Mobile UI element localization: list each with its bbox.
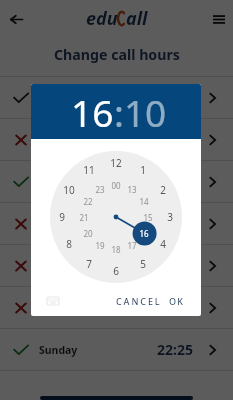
button[interactable]: Friday (0, 245, 233, 286)
button[interactable]: SAVE (40, 396, 193, 400)
button[interactable]: Tuesday (0, 119, 233, 160)
staticText: Monday (39, 91, 82, 105)
button[interactable]: Thursday (0, 203, 233, 244)
staticText: 09:30 (157, 130, 193, 149)
staticText: 1 (140, 163, 146, 177)
button[interactable]: Switch to keyboard input (44, 292, 62, 310)
staticText: 5 (140, 257, 146, 271)
staticText: 16 (71, 87, 114, 137)
staticText: 22 (83, 196, 93, 207)
staticText: :10 (114, 87, 167, 137)
staticText: 4 (160, 237, 166, 251)
staticText: Thursday (39, 217, 88, 231)
button[interactable]: Menu (207, 7, 231, 31)
button[interactable]: Saturday (0, 287, 233, 328)
button[interactable]: Monday (0, 77, 233, 118)
staticText: Wednesday (39, 175, 100, 189)
staticText: 22:25 (157, 340, 193, 359)
staticText: 11 (83, 163, 95, 177)
staticText: 17 (127, 240, 137, 251)
staticText: 13 (127, 184, 137, 195)
staticText: 18 (111, 244, 121, 255)
button[interactable]: OK (166, 290, 188, 312)
staticText: 08:00 (157, 88, 193, 107)
staticText: 2 (160, 183, 166, 197)
staticText: 10 (63, 183, 75, 197)
staticText: 3 (167, 210, 173, 224)
staticText: 23 (95, 184, 105, 195)
staticText: 10:15 (157, 172, 193, 191)
staticText: Sunday (39, 343, 78, 357)
staticText: Tuesday (39, 133, 82, 147)
staticText: Friday (39, 259, 72, 273)
button[interactable]: Back (4, 7, 28, 31)
button[interactable]: Wednesday (0, 161, 233, 202)
staticText: 18:20 (157, 298, 193, 317)
staticText: 6 (113, 264, 119, 278)
staticText: 21 (79, 212, 89, 223)
staticText: 15 (143, 212, 153, 223)
staticText: 12:00 (157, 214, 193, 233)
staticText: 7 (86, 257, 92, 271)
staticText: all (126, 6, 148, 31)
staticText: OK (169, 295, 185, 307)
staticText: 9 (59, 210, 65, 224)
staticText: edu (86, 6, 118, 31)
staticText: Change call hours (54, 45, 180, 64)
staticText: 12 (110, 156, 122, 170)
staticText: 8 (66, 237, 72, 251)
staticText: 00 (111, 180, 121, 191)
staticText: 16 (139, 228, 149, 239)
button[interactable]: Sunday (0, 329, 233, 370)
button[interactable]: CANCEL (113, 290, 165, 312)
staticText: 14:45 (157, 256, 193, 275)
staticText: 14 (139, 196, 149, 207)
staticText: Saturday (39, 301, 86, 315)
staticText: 19 (95, 240, 105, 251)
staticText: 20 (83, 228, 93, 239)
staticText: CANCEL (116, 295, 162, 307)
